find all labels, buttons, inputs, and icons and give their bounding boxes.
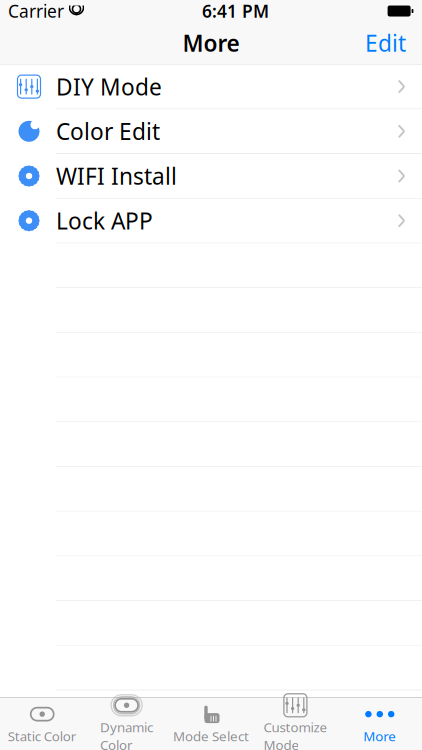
staticText: Customize Mode xyxy=(263,718,327,750)
staticText: Static Color xyxy=(8,727,77,745)
staticText: Mode Select xyxy=(173,727,249,745)
staticText: Edit xyxy=(365,28,406,58)
staticText: Carrier xyxy=(8,0,64,22)
staticText: Lock APP xyxy=(56,206,153,236)
button[interactable]: Mode Select xyxy=(169,699,253,748)
staticText: More xyxy=(182,28,239,58)
staticText: More xyxy=(363,727,396,745)
button[interactable]: Dynamic Color xyxy=(84,699,169,748)
staticText: 6:41 PM xyxy=(202,0,269,22)
button[interactable]: Static Color xyxy=(0,699,84,748)
button[interactable]: DIY Mode xyxy=(0,65,422,109)
staticText: Color Edit xyxy=(56,116,160,146)
button[interactable]: Color Edit xyxy=(0,109,422,154)
staticText: WIFI Install xyxy=(56,161,177,191)
button[interactable]: Lock APP xyxy=(0,199,422,243)
staticText: DIY Mode xyxy=(56,71,162,102)
button[interactable]: More xyxy=(338,699,422,748)
button[interactable]: WIFI Install xyxy=(0,154,422,199)
button[interactable]: Edit xyxy=(355,22,416,64)
staticText: Dynamic Color xyxy=(100,718,153,750)
button[interactable]: Customize Mode xyxy=(253,699,338,748)
